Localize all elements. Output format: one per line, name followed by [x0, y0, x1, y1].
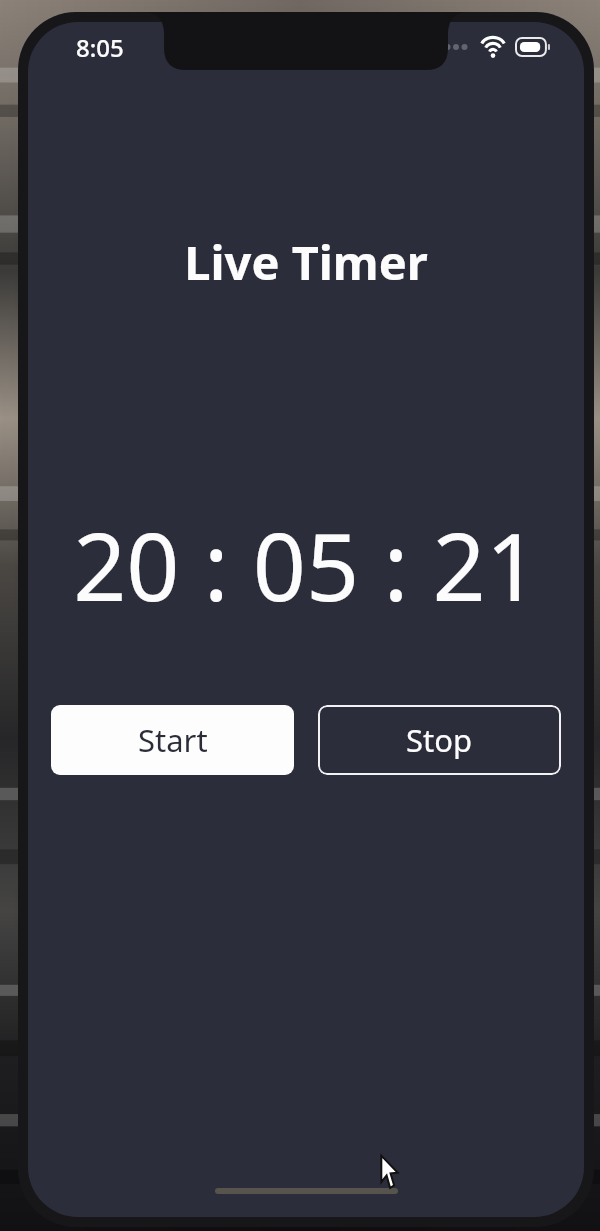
- staticText: 8:05: [76, 31, 124, 64]
- button[interactable]: Start: [51, 705, 294, 775]
- other: Home: [215, 1188, 398, 1194]
- staticText: Live Timer: [184, 230, 428, 294]
- staticText: Stop: [406, 719, 473, 761]
- staticText: 20 : 05 : 21: [73, 502, 539, 629]
- button[interactable]: Stop: [318, 705, 561, 775]
- staticText: Start: [138, 719, 208, 761]
